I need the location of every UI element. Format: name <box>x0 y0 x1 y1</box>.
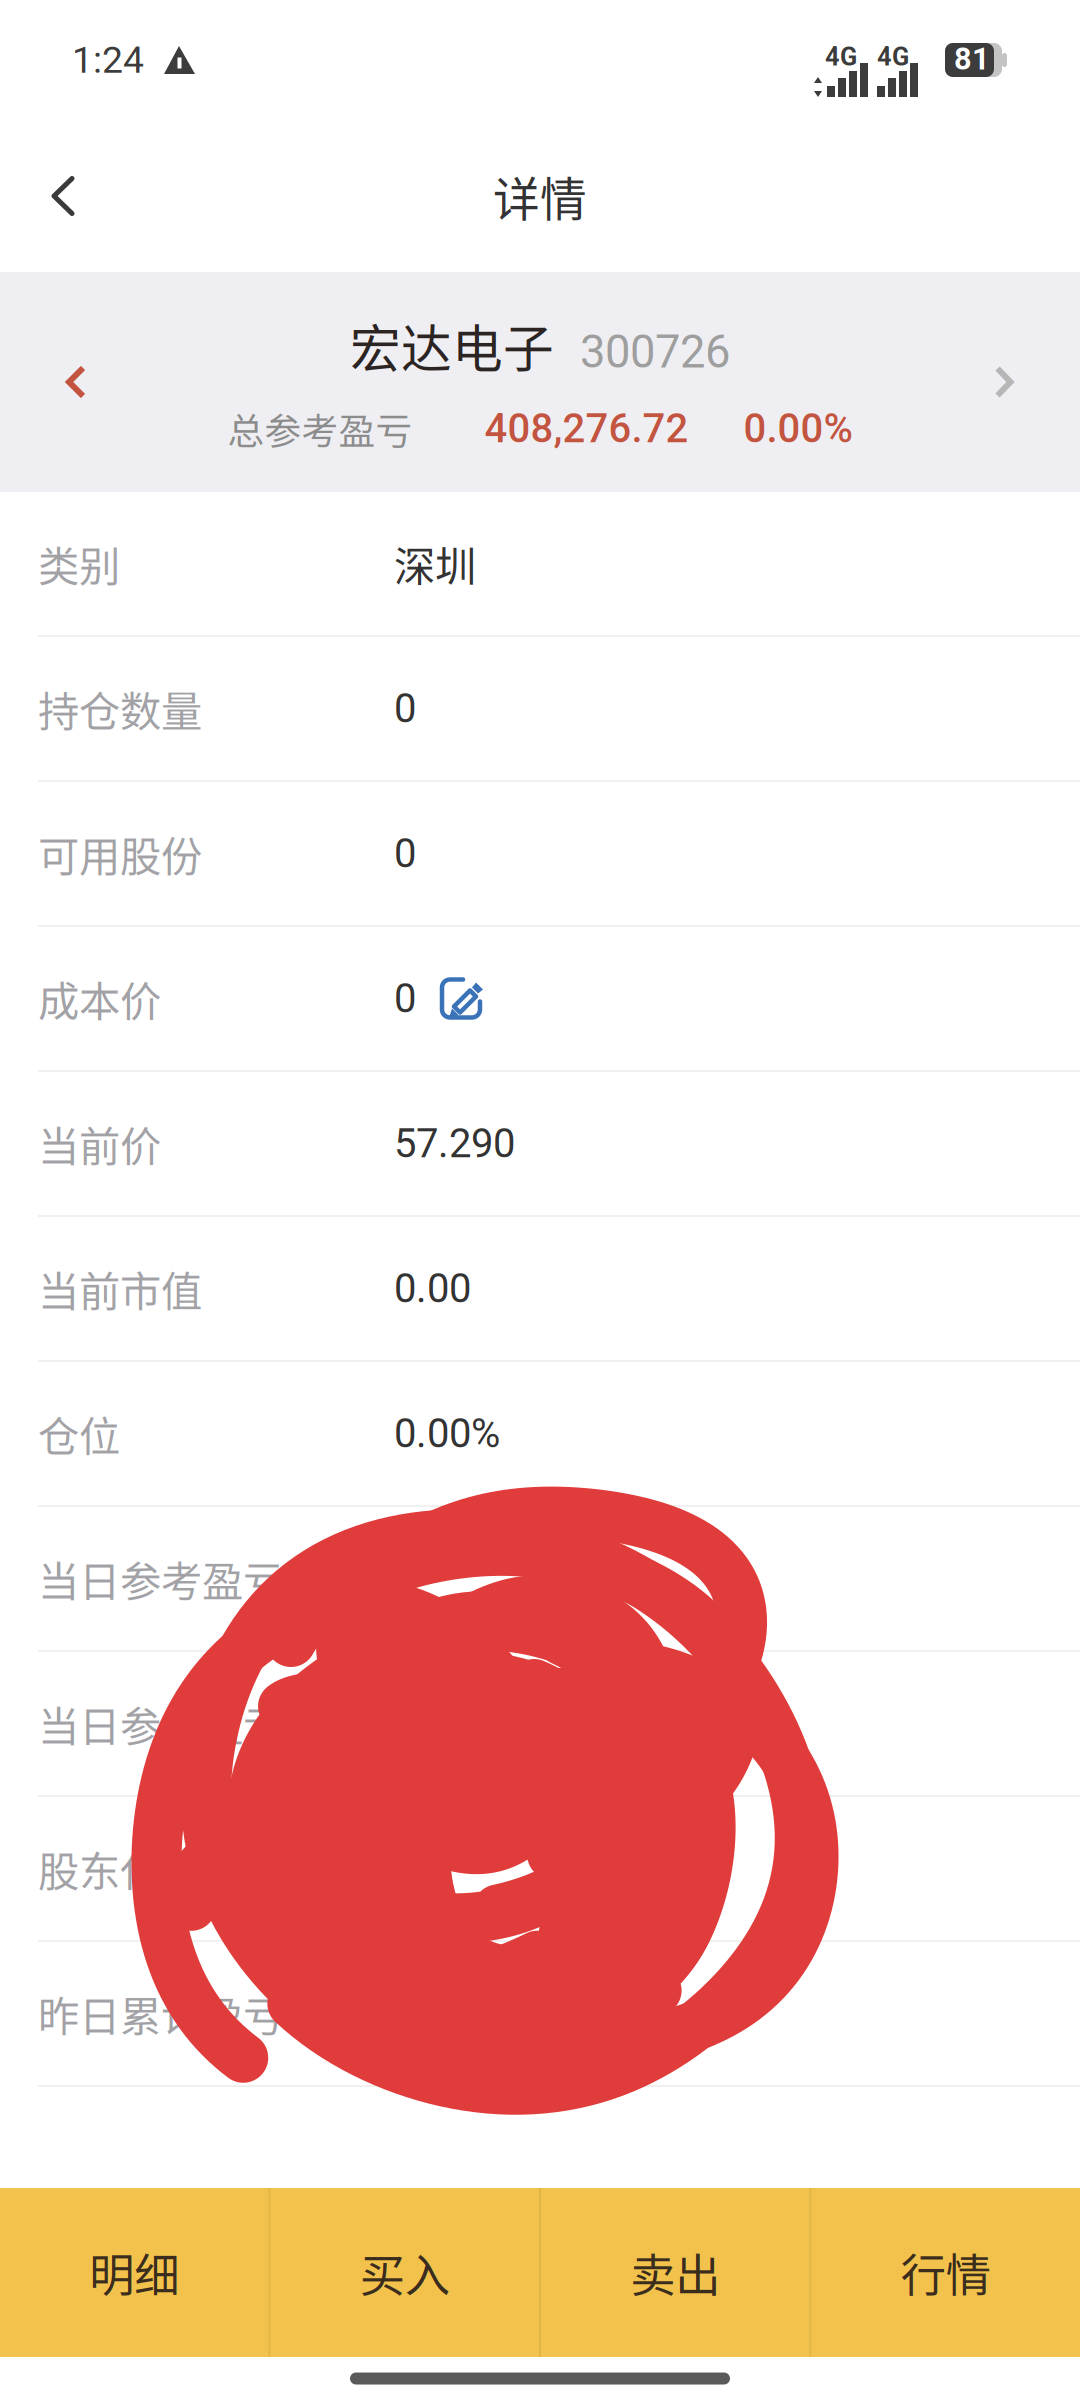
button[interactable]: 成本价 <box>0 927 1080 1070</box>
button[interactable]: 昨日累计盈亏 <box>0 1942 1080 2085</box>
button[interactable]: 当前市值 <box>0 1217 1080 1360</box>
staticText: 0 <box>394 685 416 732</box>
staticText: 4G <box>877 42 909 72</box>
staticText: 当日参考盈亏 <box>38 1694 284 1753</box>
staticText: 0 <box>394 975 416 1022</box>
button[interactable]: 当日参考盈亏 <box>0 1652 1080 1795</box>
staticText: 深圳 <box>394 534 476 593</box>
staticText: 股东代码 <box>38 1839 202 1898</box>
staticText: 仓位 <box>38 1404 120 1463</box>
staticText: 当日参考盈亏 <box>38 1549 284 1608</box>
staticText: 详情 <box>493 162 587 230</box>
button[interactable]: 可用股份 <box>0 782 1080 925</box>
staticText: 4G <box>825 42 857 72</box>
staticText: 81 <box>954 41 990 77</box>
button[interactable]: 仓位 <box>0 1362 1080 1505</box>
button[interactable]: 行情 <box>811 2188 1080 2357</box>
staticText: 总参考盈亏 <box>227 402 412 455</box>
staticText: 行情 <box>901 2240 991 2305</box>
staticText: 408,276.72 <box>484 405 688 452</box>
staticText: 可用股份 <box>38 824 202 883</box>
staticText: 类别 <box>38 534 120 593</box>
staticText: 卖出 <box>630 2240 720 2305</box>
staticText: 宏达电子 <box>350 309 554 382</box>
button[interactable]: 股东代码 <box>0 1797 1080 1940</box>
staticText: 1:24 <box>72 38 144 82</box>
button[interactable]: Edit cost price <box>416 963 484 1033</box>
staticText: 0.00% <box>394 1410 500 1457</box>
button[interactable]: Next stock <box>928 302 1080 462</box>
staticText: 当前市值 <box>38 1259 202 1318</box>
staticText: 明细 <box>89 2240 179 2305</box>
button[interactable]: 买入 <box>270 2188 539 2357</box>
button[interactable]: 当前价 <box>0 1072 1080 1215</box>
button[interactable]: Previous stock <box>0 302 152 462</box>
staticText: 持仓数量 <box>38 679 202 738</box>
staticText: 0.00% <box>743 405 852 452</box>
staticText: 57.290 <box>394 1120 515 1167</box>
staticText: 昨日累计盈亏 <box>38 1984 284 2043</box>
button[interactable]: 当日参考盈亏 <box>0 1507 1080 1650</box>
button[interactable]: Back <box>0 130 126 262</box>
button[interactable]: 卖出 <box>541 2188 809 2357</box>
button[interactable]: 类别 <box>0 492 1080 635</box>
staticText: 300726 <box>580 325 730 379</box>
button[interactable]: 明细 <box>0 2188 268 2357</box>
staticText: 0 <box>394 830 416 877</box>
staticText: 0.00 <box>394 1265 471 1312</box>
staticText: 买入 <box>360 2240 450 2305</box>
staticText: 当前价 <box>38 1114 161 1173</box>
staticText: 成本价 <box>38 969 161 1028</box>
button[interactable]: 持仓数量 <box>0 637 1080 780</box>
